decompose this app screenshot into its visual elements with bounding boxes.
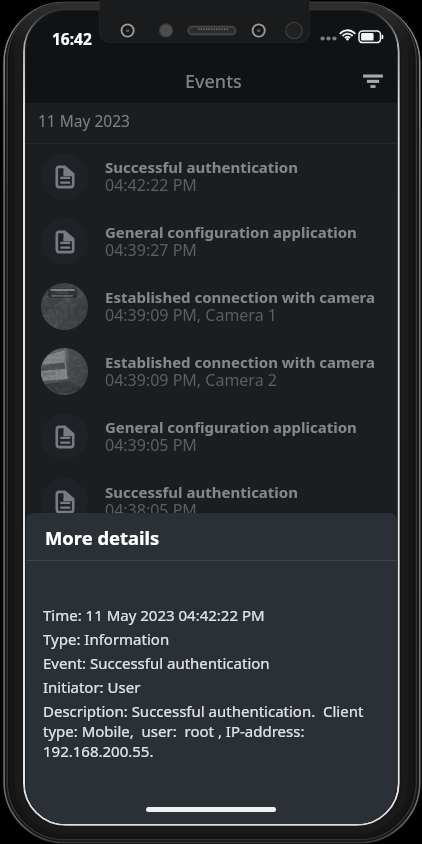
button[interactable]: Successful authentication: [26, 144, 397, 209]
button[interactable]: Filter: [351, 60, 395, 104]
staticText: 04:39:09 PM, Camera 2: [105, 369, 277, 391]
button[interactable]: Established connection with camera: [26, 274, 397, 339]
staticText: Events: [185, 69, 242, 94]
staticText: Successful authentication: [105, 157, 298, 177]
staticText: Initiator: User: [43, 677, 141, 701]
staticText: Time: 11 May 2023 04:42:22 PM: [43, 605, 265, 629]
staticText: General configuration application: [105, 417, 357, 437]
staticText: Successful authentication: [105, 482, 298, 502]
staticText: 11 May 2023: [38, 110, 130, 131]
staticText: Event: Successful authentication: [43, 653, 270, 677]
staticText: 04:38:05 PM: [105, 499, 197, 521]
button[interactable]: Established connection with camera: [26, 339, 397, 404]
staticText: 16:42: [52, 28, 92, 49]
staticText: More details: [45, 525, 160, 550]
button[interactable]: General configuration application: [26, 209, 397, 274]
staticText: 04:42:22 PM: [105, 174, 197, 196]
button[interactable]: Successful authentication: [26, 469, 397, 534]
staticText: 04:39:09 PM, Camera 1: [105, 304, 277, 326]
staticText: 04:39:27 PM: [105, 239, 197, 261]
button[interactable]: General configuration application: [26, 404, 397, 469]
staticText: General configuration application: [105, 222, 357, 242]
staticText: Type: Information: [43, 629, 170, 653]
staticText: Description: Successful authentication. …: [43, 701, 373, 761]
staticText: Established connection with camera: [105, 287, 375, 307]
staticText: Established connection with camera: [105, 352, 375, 372]
staticText: 04:39:05 PM: [105, 434, 197, 456]
